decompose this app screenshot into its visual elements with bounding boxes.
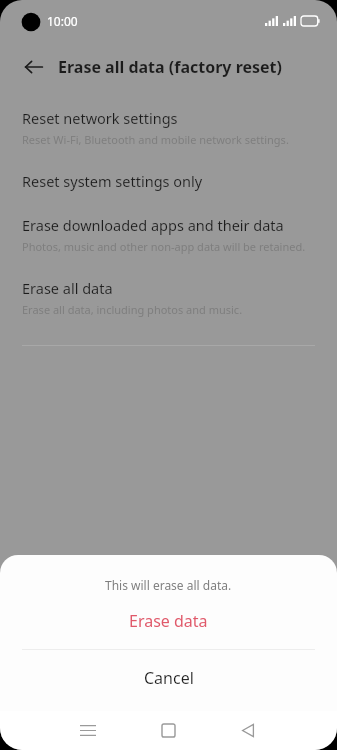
button[interactable]: Recent apps (66, 711, 110, 750)
button[interactable]: Reset network settings (0, 96, 337, 159)
button[interactable]: Erase data (0, 593, 337, 649)
button[interactable]: Erase downloaded apps and their data (0, 203, 337, 266)
staticText: Cancel (144, 667, 194, 689)
button[interactable]: Back (226, 711, 270, 750)
button[interactable]: Back (16, 49, 52, 85)
staticText: Reset network settings (22, 108, 178, 128)
staticText: Erase downloaded apps and their data (22, 215, 284, 235)
button[interactable]: Reset system settings only (0, 159, 337, 203)
staticText: This will erase all data. (105, 577, 232, 593)
staticText: Photos, music and other non-app data wil… (22, 239, 306, 254)
staticText: Erase all data (factory reset) (58, 56, 282, 78)
button[interactable]: Erase all data (0, 266, 337, 329)
button[interactable]: Home (146, 711, 190, 750)
staticText: Erase data (129, 610, 208, 632)
staticText: Erase all data (22, 278, 113, 298)
staticText: Reset Wi-Fi, Bluetooth and mobile networ… (22, 132, 289, 147)
button[interactable]: Cancel (0, 650, 337, 706)
staticText: Reset system settings only (22, 171, 203, 191)
staticText: Erase all data, including photos and mus… (22, 302, 243, 317)
staticText: 10:00 (47, 13, 78, 29)
